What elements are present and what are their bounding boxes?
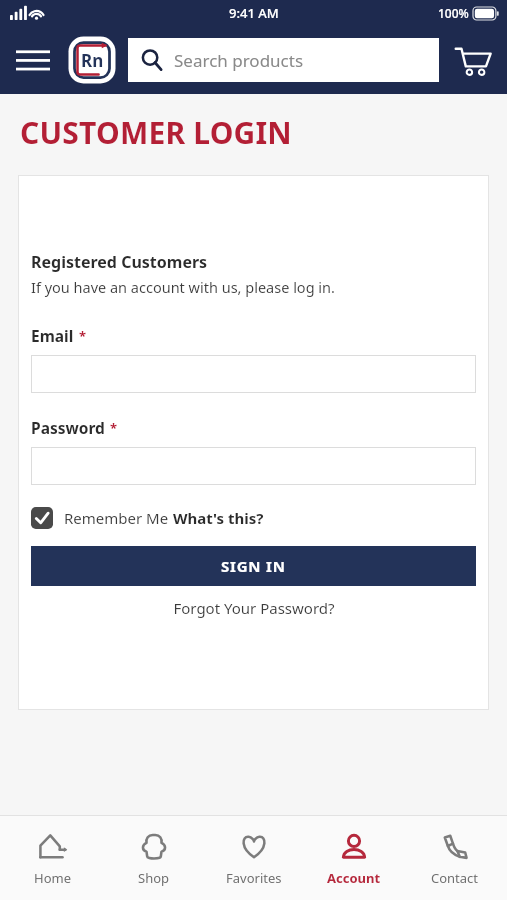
staticText: Search products bbox=[174, 49, 304, 72]
button[interactable]: Menu bbox=[0, 26, 66, 94]
staticText: SIGN IN bbox=[221, 556, 286, 576]
staticText: * bbox=[110, 419, 118, 437]
staticText: 9:41 AM bbox=[229, 4, 279, 22]
staticText: Forgot Your Password? bbox=[173, 598, 335, 618]
staticText: 100% bbox=[438, 5, 469, 21]
staticText: Account bbox=[327, 869, 381, 887]
staticText: Remember Me bbox=[64, 508, 173, 528]
staticText: Contact bbox=[431, 869, 479, 887]
button[interactable]: SIGN IN bbox=[31, 546, 476, 586]
staticText: CUSTOMER LOGIN bbox=[20, 112, 292, 153]
staticText: Rn bbox=[81, 49, 104, 72]
button[interactable]: Home logo bbox=[66, 34, 118, 86]
staticText: Email bbox=[31, 325, 74, 346]
button[interactable]: Shop bbox=[106, 816, 201, 900]
button[interactable]: Favorites bbox=[206, 816, 301, 900]
staticText: If you have an account with us, please l… bbox=[31, 277, 335, 297]
staticText: Password bbox=[31, 417, 105, 438]
button[interactable] bbox=[31, 355, 476, 393]
button[interactable]: Contact bbox=[407, 816, 502, 900]
button[interactable]: What's this? bbox=[173, 508, 264, 528]
staticText: Shop bbox=[138, 869, 170, 887]
staticText: * bbox=[79, 327, 87, 345]
button[interactable] bbox=[31, 447, 476, 485]
staticText: Home bbox=[34, 869, 71, 887]
button[interactable]: Search products bbox=[128, 38, 439, 82]
button[interactable]: Account bbox=[306, 816, 401, 900]
button[interactable]: Cart bbox=[439, 26, 507, 94]
button[interactable]: Forgot Your Password? bbox=[31, 598, 476, 618]
staticText: Registered Customers bbox=[31, 251, 208, 273]
button[interactable]: Remember Me bbox=[31, 507, 264, 529]
staticText: Favorites bbox=[226, 869, 282, 887]
button[interactable]: Home bbox=[5, 816, 100, 900]
